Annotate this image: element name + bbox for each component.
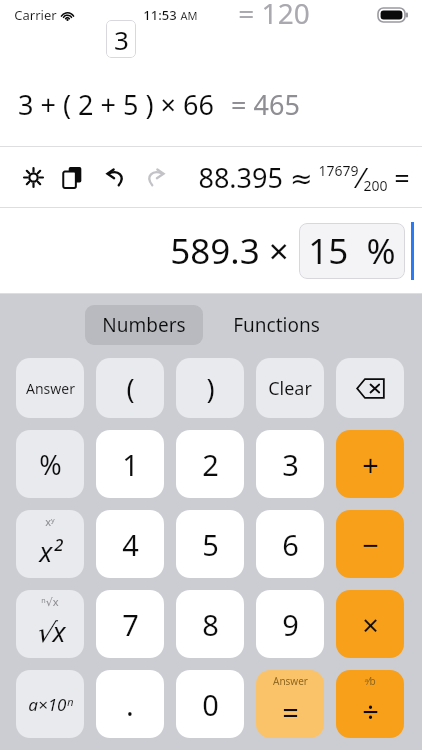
staticText: x² <box>39 533 62 570</box>
staticText: ⁿ√x <box>41 594 59 609</box>
staticText: Answer <box>26 379 75 398</box>
button[interactable]: Answer <box>16 358 84 418</box>
button[interactable]: 8 <box>176 590 244 658</box>
staticText: = <box>282 692 299 731</box>
staticText: 5 <box>202 525 219 564</box>
button[interactable]: 7 <box>96 590 164 658</box>
button[interactable]: Clear <box>256 358 324 418</box>
button[interactable]: ) <box>176 358 244 418</box>
staticText: xʸ <box>45 514 55 529</box>
button[interactable]: Functions <box>216 305 337 345</box>
staticText: 17679 <box>318 161 359 180</box>
staticText: 1 <box>122 445 139 484</box>
button[interactable]: 6 <box>256 510 324 578</box>
button[interactable]: % <box>16 430 84 498</box>
staticText: 11:53 <box>143 6 177 24</box>
staticText: − <box>362 525 379 564</box>
staticText: 3 <box>282 445 299 484</box>
button[interactable]: Settings <box>16 160 50 194</box>
button[interactable]: 589.3 × <box>0 208 422 293</box>
button[interactable]: 3 + ( 2 + 5 ) × 66 <box>0 62 422 146</box>
staticText: . <box>126 685 134 724</box>
button[interactable]: Numbers <box>85 305 203 345</box>
staticText: Carrier <box>14 6 57 24</box>
staticText: AM <box>180 8 198 23</box>
button[interactable]: 3 <box>256 430 324 498</box>
staticText: % <box>39 446 62 483</box>
staticText: 6 <box>282 525 299 564</box>
staticText: Answer <box>273 674 308 688</box>
staticText: ) <box>206 370 215 407</box>
staticText: 3 <box>114 22 129 57</box>
staticText: a×10ⁿ <box>28 693 73 716</box>
staticText: ⁄ <box>359 158 363 196</box>
button[interactable]: . <box>96 670 164 738</box>
staticText: 88.395 ≈ <box>198 159 313 196</box>
button[interactable]: ⁿ√x <box>16 590 84 658</box>
staticText: = <box>394 159 410 196</box>
staticText: 15 % <box>308 227 396 275</box>
staticText: Clear <box>268 376 312 401</box>
staticText: Numbers <box>102 312 186 338</box>
staticText: ᵃ⁄b <box>364 674 376 688</box>
button[interactable]: 4 <box>96 510 164 578</box>
button[interactable]: a×10ⁿ <box>16 670 84 738</box>
button[interactable]: 5 <box>176 510 244 578</box>
button[interactable]: Redo <box>138 160 172 194</box>
staticText: Functions <box>233 312 320 338</box>
button[interactable]: ( <box>96 358 164 418</box>
button[interactable]: 0 <box>176 670 244 738</box>
button[interactable]: 9 <box>256 590 324 658</box>
button[interactable]: 2 <box>176 430 244 498</box>
staticText: √x <box>35 613 66 650</box>
staticText: ÷ <box>362 692 379 731</box>
staticText: + <box>362 445 379 484</box>
staticText: 4 <box>122 525 139 564</box>
button[interactable]: × <box>336 590 404 658</box>
staticText: × <box>362 605 379 644</box>
staticText: 589.3 × <box>170 227 289 275</box>
staticText: 9 <box>282 605 299 644</box>
staticText: 8 <box>202 605 219 644</box>
button[interactable]: Copy <box>55 160 89 194</box>
staticText: ( <box>126 370 135 407</box>
button[interactable]: + <box>336 430 404 498</box>
button[interactable]: − <box>336 510 404 578</box>
button[interactable]: 1 <box>96 430 164 498</box>
button[interactable]: Undo <box>98 160 132 194</box>
staticText: = 120 <box>238 0 310 32</box>
button[interactable]: Answer <box>256 670 324 738</box>
button[interactable]: Backspace <box>336 358 404 418</box>
staticText: 7 <box>122 605 139 644</box>
staticText: 2 <box>202 445 219 484</box>
staticText: = 465 <box>231 86 300 123</box>
staticText: 3 + ( 2 + 5 ) × 66 <box>18 86 214 123</box>
button[interactable]: xʸ <box>16 510 84 578</box>
staticText: 200 <box>363 176 388 195</box>
button[interactable]: ᵃ⁄b <box>336 670 404 738</box>
staticText: 0 <box>202 685 219 724</box>
